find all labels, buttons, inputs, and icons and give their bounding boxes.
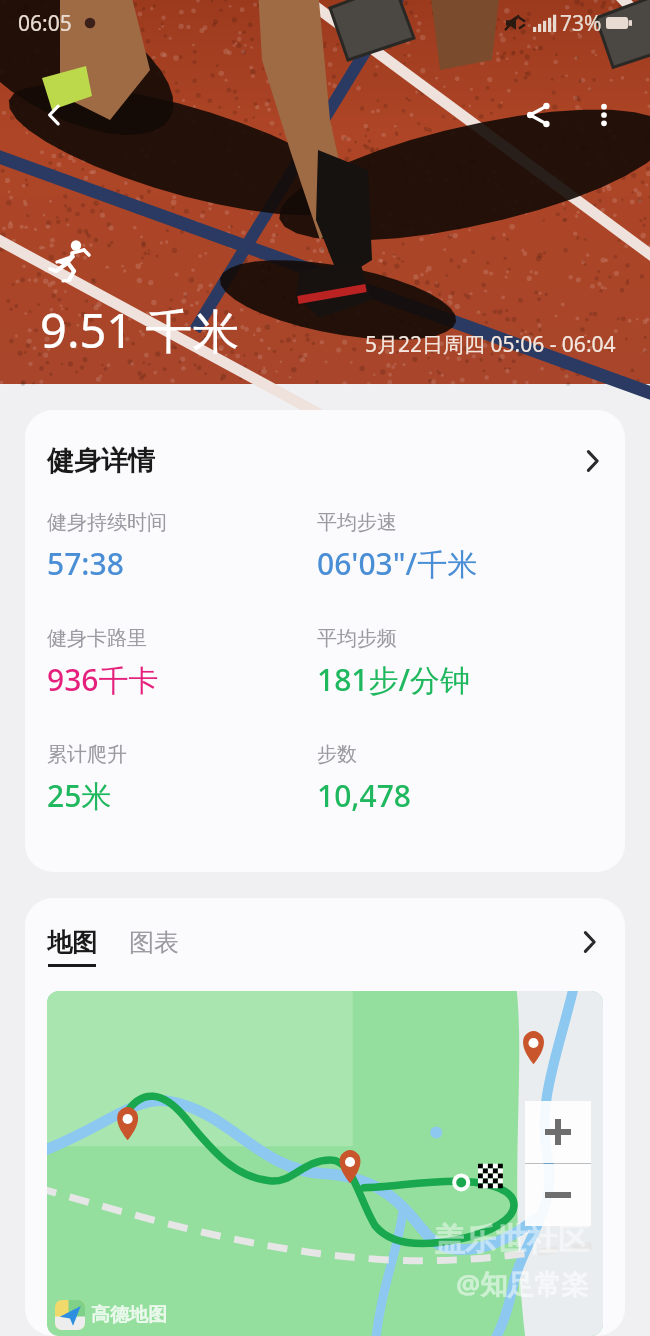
- button[interactable]: 图表: [129, 927, 179, 967]
- staticText: 健身持续时间: [47, 510, 167, 535]
- staticText: 步数: [317, 742, 357, 767]
- staticText: 盖乐世社区: [434, 1220, 589, 1259]
- button[interactable]: More options: [576, 88, 632, 142]
- button[interactable]: Back: [26, 88, 82, 142]
- staticText: 9.51 千米: [40, 298, 240, 362]
- staticText: 73%: [560, 9, 602, 38]
- button[interactable]: Zoom out: [525, 1164, 591, 1226]
- button[interactable]: 健身详情: [25, 410, 625, 494]
- button[interactable]: 地图: [47, 927, 97, 967]
- button[interactable]: Route map: [47, 991, 603, 1336]
- staticText: 181步/分钟: [317, 659, 471, 700]
- button[interactable]: Share: [510, 88, 566, 142]
- staticText: 57:38: [47, 543, 124, 584]
- staticText: 健身卡路里: [47, 626, 147, 651]
- staticText: 06'03"/千米: [317, 543, 478, 584]
- staticText: 5月22日周四 05:06 - 06:04: [365, 330, 616, 359]
- staticText: 25米: [47, 775, 112, 816]
- staticText: @知足常楽: [456, 1265, 589, 1302]
- button[interactable]: Zoom in: [525, 1101, 591, 1163]
- staticText: 06:05: [18, 9, 72, 38]
- staticText: 健身详情: [47, 444, 155, 478]
- staticText: 图表: [129, 927, 179, 958]
- staticText: 平均步速: [317, 510, 397, 535]
- staticText: 平均步频: [317, 626, 397, 651]
- staticText: 累计爬升: [47, 742, 127, 767]
- staticText: 高德地图: [91, 1303, 167, 1327]
- button[interactable]: Open map details: [573, 926, 605, 958]
- staticText: 10,478: [317, 775, 411, 816]
- staticText: 地图: [47, 927, 97, 958]
- staticText: 936千卡: [47, 659, 159, 700]
